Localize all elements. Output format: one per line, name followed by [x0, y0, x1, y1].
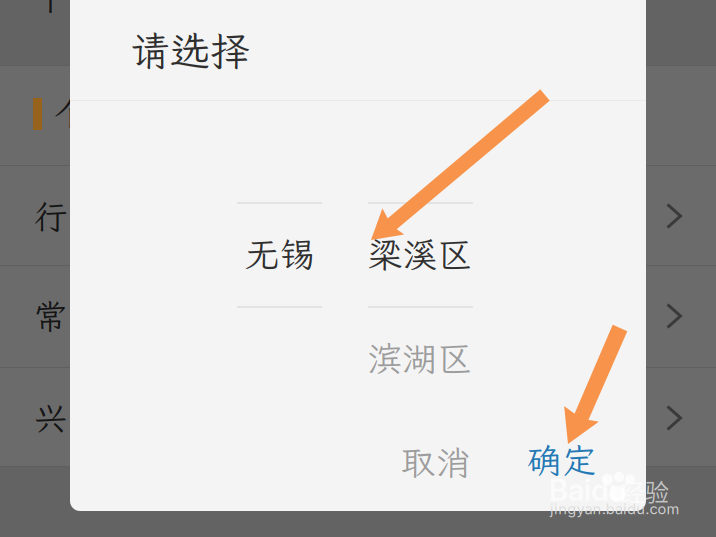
staticText: 兴 — [34, 396, 67, 440]
button[interactable]: 兴 — [0, 400, 716, 436]
staticText: Baidu — [549, 472, 626, 508]
button[interactable]: 取消 — [376, 432, 496, 492]
staticText: 滨湖区 — [367, 335, 472, 381]
staticText: 取消 — [401, 439, 471, 485]
staticText: 常 — [34, 294, 67, 338]
staticText: 梁溪区 — [367, 231, 472, 277]
staticText: 个 — [54, 91, 87, 135]
button[interactable]: 常 — [0, 298, 716, 334]
button[interactable]: 行 — [0, 198, 716, 234]
staticText: 确定 — [527, 437, 597, 483]
staticText: 经验 — [621, 474, 669, 508]
staticText: 请选择 — [130, 24, 250, 77]
staticText: jingyan.baidu.com — [550, 500, 680, 518]
staticText: 丫 — [34, 0, 67, 20]
staticText: 行 — [34, 194, 67, 238]
button[interactable]: 确定 — [492, 430, 632, 490]
staticText: 无锡 — [245, 231, 315, 277]
